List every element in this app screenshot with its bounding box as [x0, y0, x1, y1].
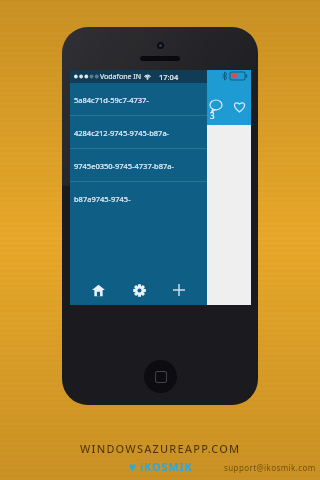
- staticText: 5a84c71d-59c7-4737-b87a-9745e0350a89: [74, 95, 205, 105]
- staticText: WINDOWSAZUREAPP.COM: [80, 441, 241, 456]
- staticText: 17:04: [159, 72, 179, 82]
- button[interactable]: Comments, 3: [210, 100, 227, 122]
- button[interactable]: Settings: [126, 277, 152, 303]
- button[interactable]: Home: [85, 277, 111, 303]
- button[interactable]: 9745e0350-9745-4737-b87a-b87ad21241v: [70, 149, 207, 182]
- button[interactable]: Add: [166, 277, 192, 303]
- button[interactable]: 5a84c71d-59c7-4737-b87a-9745e0350a89: [70, 83, 207, 116]
- staticText: b87a9745-9745-b87a-4737-5a84c71dwe41: [74, 194, 205, 204]
- staticText: 4284c212-9745-9745-b87a-b87ab87a4013: [74, 128, 205, 138]
- staticText: 3: [210, 110, 215, 121]
- button[interactable]: 4284c212-9745-9745-b87a-b87ab87a4013: [70, 116, 207, 149]
- staticText: 9745e0350-9745-4737-b87a-b87ad21241v: [74, 161, 205, 171]
- button[interactable]: b87a9745-9745-b87a-4737-5a84c71dwe41: [70, 182, 207, 215]
- staticText: iKOSMIK: [140, 459, 193, 474]
- staticText: support@ikosmik.com: [224, 462, 316, 473]
- staticText: Vodafone IN: [100, 72, 141, 82]
- button[interactable]: Like: [231, 100, 248, 122]
